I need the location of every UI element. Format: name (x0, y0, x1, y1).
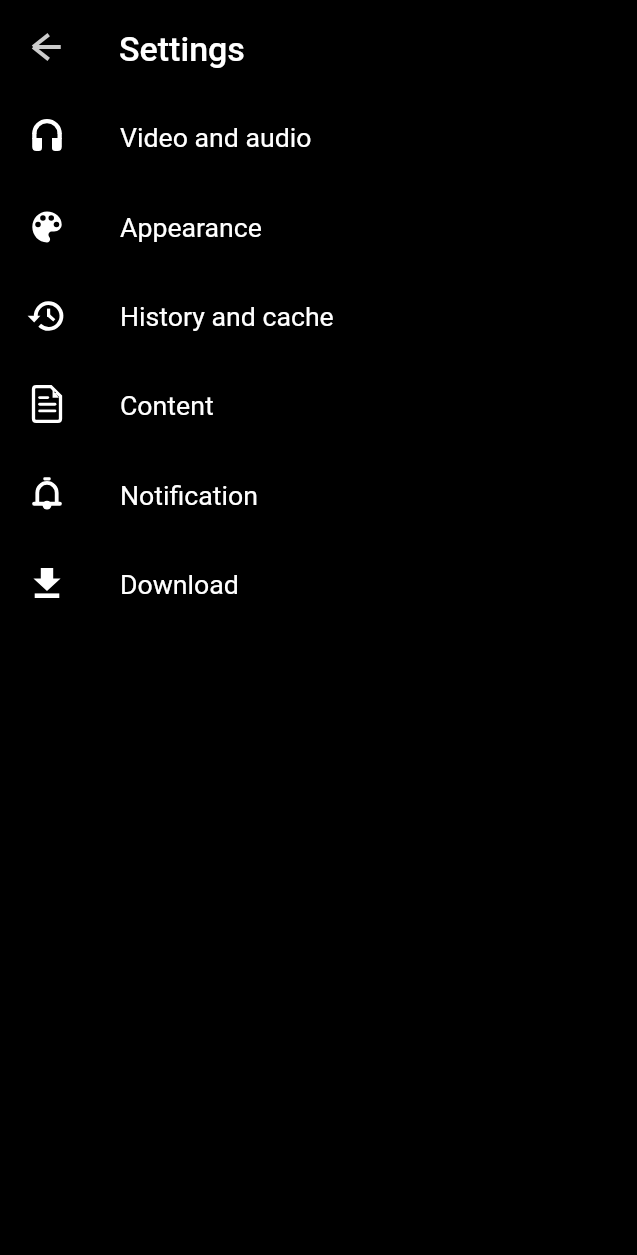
button[interactable]: Content (0, 358, 637, 447)
staticText: Download (120, 569, 239, 600)
button[interactable]: Notification (0, 448, 637, 537)
staticText: History and cache (120, 301, 334, 332)
button[interactable]: History and cache (0, 269, 637, 358)
staticText: Notification (120, 480, 258, 511)
button[interactable]: Video and audio (0, 90, 637, 179)
button[interactable]: Back (23, 23, 71, 71)
staticText: Settings (119, 29, 245, 69)
button[interactable]: Appearance (0, 180, 637, 269)
button[interactable]: Download (0, 537, 637, 626)
staticText: Video and audio (120, 122, 312, 153)
staticText: Content (120, 390, 214, 421)
staticText: Appearance (120, 212, 262, 243)
